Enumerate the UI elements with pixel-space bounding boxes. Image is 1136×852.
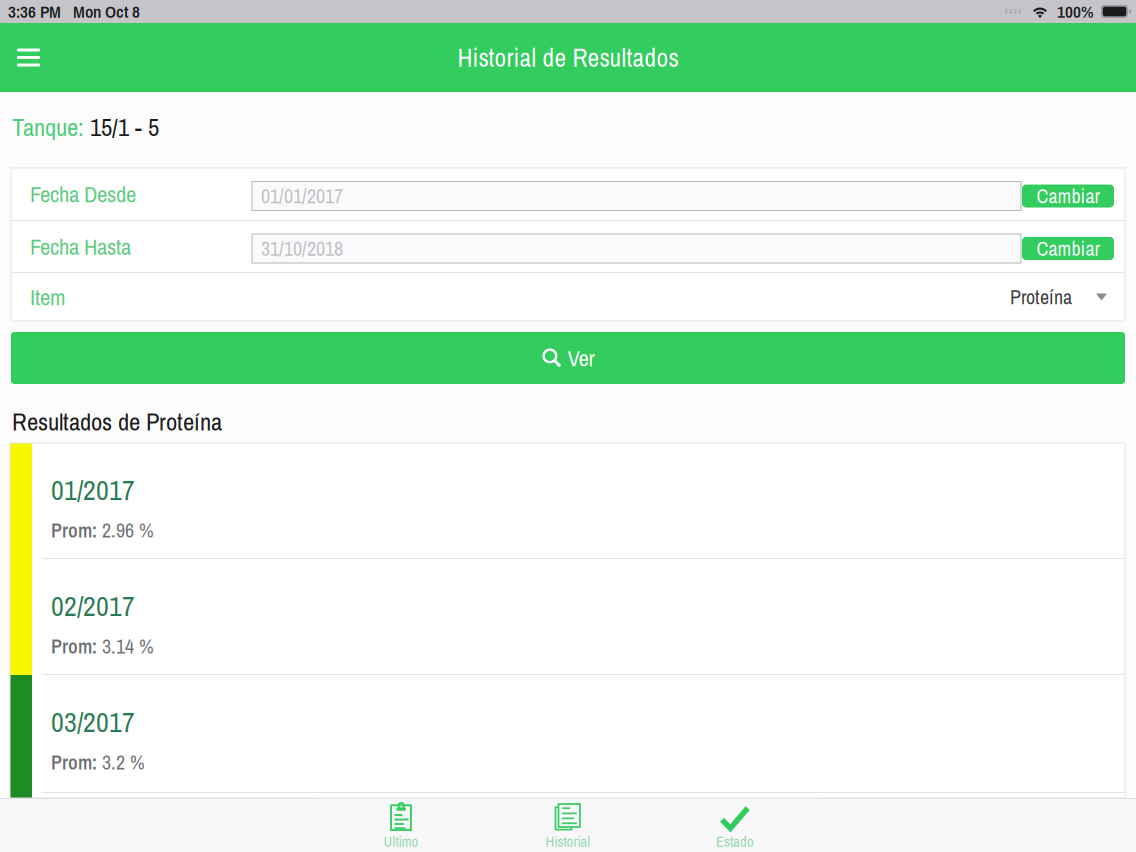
staticText: 3.14 %	[102, 633, 154, 660]
staticText: 01/2017	[51, 471, 135, 509]
button[interactable]: Menu	[0, 27, 57, 87]
staticText: 15/1 - 5	[90, 110, 159, 144]
staticText: 100%	[1057, 0, 1094, 23]
staticText: 03/2017	[51, 703, 135, 741]
staticText: Historial de Resultados	[457, 40, 678, 74]
button[interactable]: 02/2017	[10, 559, 1125, 675]
button[interactable]: Cambiar	[1022, 182, 1114, 205]
staticText: Cambiar	[1036, 235, 1099, 262]
staticText: 3.2 %	[102, 749, 145, 776]
staticText: 3:36 PM	[8, 0, 61, 23]
staticText: Proteína	[1010, 283, 1072, 310]
button[interactable]: 01/2017	[10, 443, 1125, 559]
button[interactable]: 03/2017	[10, 675, 1125, 798]
staticText: 01/01/2017	[261, 182, 343, 209]
button[interactable]: Proteína	[992, 273, 1125, 321]
staticText: Mon Oct 8	[73, 0, 140, 23]
staticText: Fecha Desde	[30, 179, 136, 209]
button[interactable]: Cambiar	[1022, 235, 1114, 258]
button[interactable]: Ver	[11, 332, 1125, 384]
button[interactable]: Historial	[484, 798, 651, 852]
staticText: Ver	[567, 343, 594, 373]
button[interactable]: Estado	[651, 798, 818, 852]
staticText: 02/2017	[51, 587, 135, 625]
staticText: Historial	[545, 831, 590, 851]
staticText: Estado	[716, 831, 754, 851]
staticText: Item	[30, 282, 65, 312]
staticText: Fecha Hasta	[30, 231, 131, 262]
staticText: Cambiar	[1036, 182, 1099, 209]
staticText: Ultimo	[383, 831, 418, 851]
staticText: 31/10/2018	[261, 235, 343, 262]
staticText: Prom:	[51, 633, 97, 660]
staticText: Prom:	[51, 749, 97, 776]
staticText: 2.96 %	[102, 517, 154, 544]
staticText: Tanque:	[12, 110, 90, 144]
staticText: Resultados de Proteína	[12, 405, 222, 438]
staticText: Prom:	[51, 517, 97, 544]
button[interactable]: Ultimo	[317, 798, 484, 852]
